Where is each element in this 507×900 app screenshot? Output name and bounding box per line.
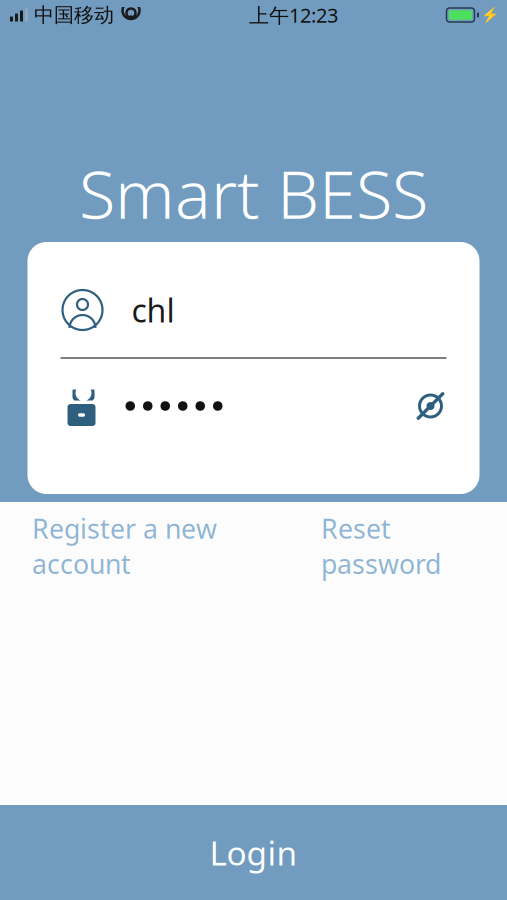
staticText: 上午12:23: [249, 2, 338, 28]
button[interactable]: Login: [0, 805, 507, 900]
staticText: Reset password: [321, 511, 441, 581]
staticText: chl: [131, 289, 174, 331]
button[interactable]: Register a new account: [28, 501, 221, 591]
staticText: Login: [209, 830, 297, 875]
staticText: ⚡: [481, 7, 499, 23]
button[interactable]: Reset password: [317, 501, 445, 591]
staticText: Register a new account: [32, 511, 217, 581]
staticText: 中国移动: [34, 3, 114, 27]
button[interactable]: Show password: [405, 381, 455, 431]
staticText: Smart BESS: [79, 149, 428, 237]
